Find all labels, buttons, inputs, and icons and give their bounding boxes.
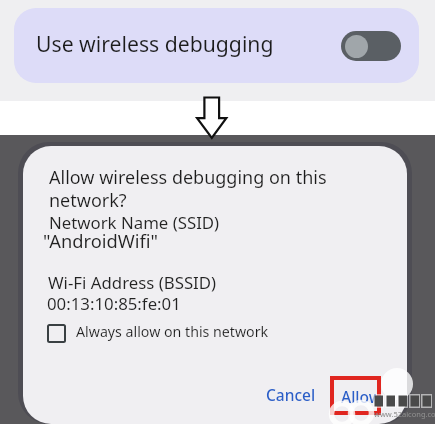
staticText: Use wireless debugging: [36, 29, 274, 58]
staticText: Allow wireless debugging on this network…: [49, 165, 327, 213]
staticText: Allow: [341, 386, 382, 407]
button[interactable]: Use wireless debugging: [14, 8, 419, 83]
staticText: 00:13:10:85:fe:01: [47, 292, 181, 315]
staticText: www.52aicong.com: [374, 409, 435, 419]
button[interactable]: Allow: [338, 384, 384, 408]
staticText: Always allow on this network: [76, 322, 269, 341]
staticText: "AndroidWifi": [43, 228, 158, 253]
button[interactable]: Cancel: [258, 381, 324, 407]
staticText: Cancel: [266, 384, 316, 405]
staticText: Network Name (SSID): [49, 211, 220, 234]
button[interactable]: [341, 31, 401, 61]
staticText: Wi-Fi Address (BSSID): [48, 271, 217, 294]
button[interactable]: Always allow on this network: [47, 320, 292, 346]
